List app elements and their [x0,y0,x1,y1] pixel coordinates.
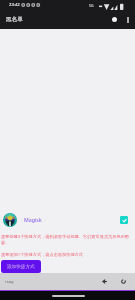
button[interactable]: More options [122,14,133,25]
button[interactable]: Magisk [0,211,135,228]
staticText: 需要创建3个快捷方式，请到桌面手动创建。它们通常显示为灰色的图标。 [1,234,134,245]
button[interactable]: Refresh [118,276,129,287]
button[interactable]: 添加快捷方式 [1,260,41,273]
staticText: Magisk [24,216,42,223]
button[interactable]: Help [108,13,121,26]
staticText: 需要添加1个快捷方式，请点击添加快捷方式 [1,252,83,258]
staticText: 5G [89,3,94,8]
staticText: 添加快捷方式 [7,264,35,270]
button[interactable]: Hide Magisk [120,216,128,224]
staticText: 黑名单 [6,16,23,23]
staticText: rsag [5,279,14,285]
button[interactable]: Back [99,276,110,287]
staticText: 23:42 [9,2,20,8]
